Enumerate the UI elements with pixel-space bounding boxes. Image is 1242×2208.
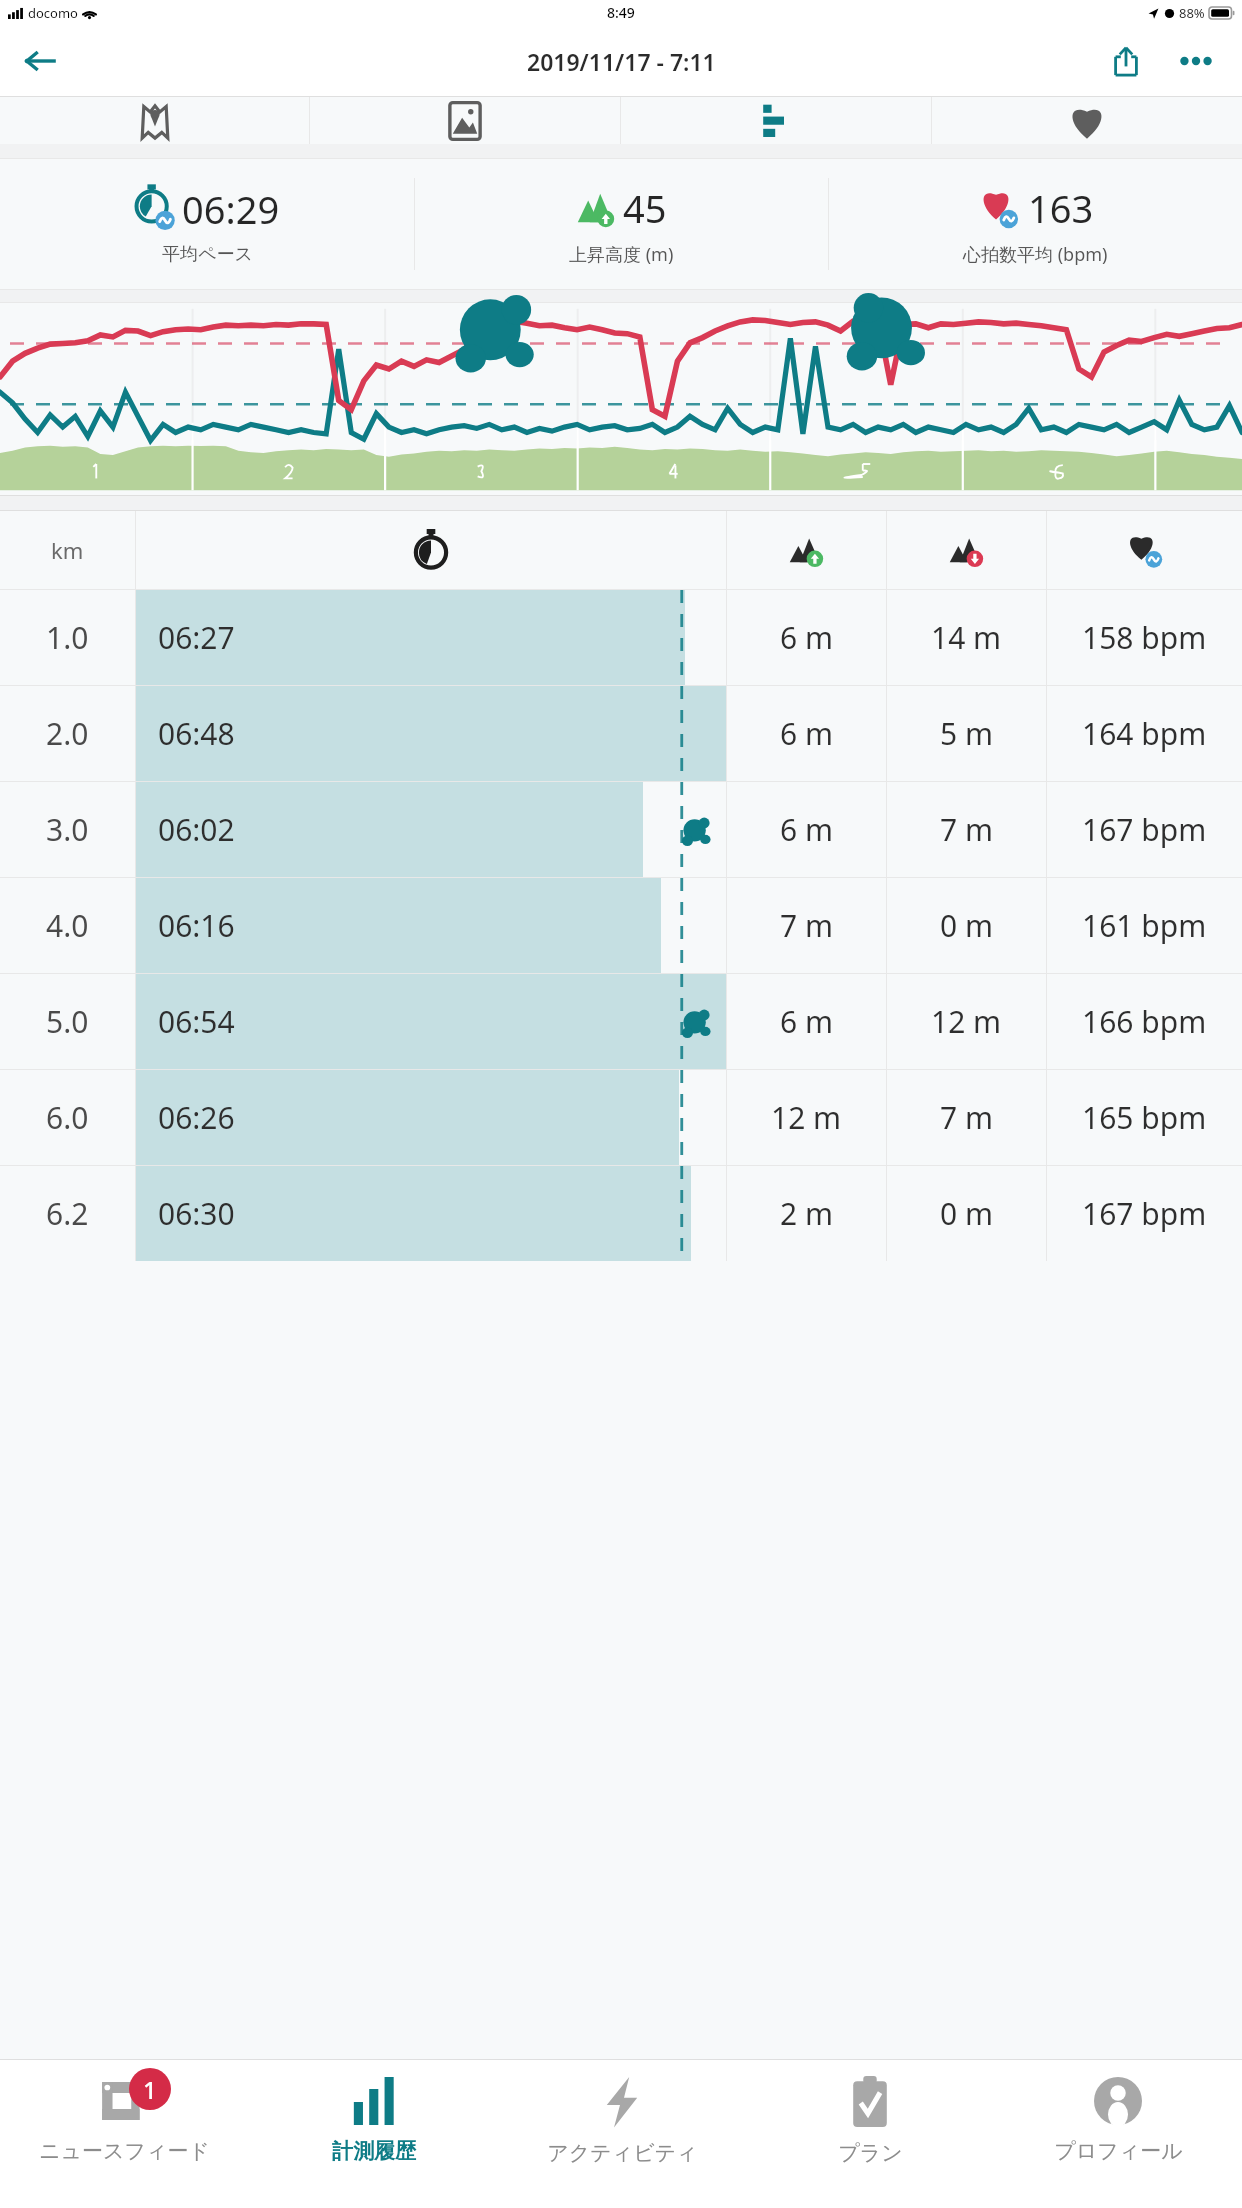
staticText: 平均ペース (162, 243, 253, 266)
staticText: 5.0 (46, 1001, 89, 1042)
button[interactable]: 1.0 (0, 590, 1242, 685)
staticText: 6.2 (46, 1193, 89, 1234)
button[interactable]: 5.0 (0, 974, 1242, 1069)
staticText: 167 bpm (1082, 1193, 1207, 1234)
staticText: 14 m (931, 617, 1002, 658)
staticText: 2019/11/17 - 7:11 (527, 46, 716, 77)
button[interactable]: 45 (415, 159, 828, 289)
staticText: 6 m (780, 713, 834, 754)
staticText: 3.0 (46, 809, 89, 850)
staticText: 163 (1028, 182, 1094, 234)
staticText: 12 m (931, 1001, 1002, 1042)
staticText: 167 bpm (1082, 809, 1207, 850)
button[interactable]: 3.0 (0, 782, 1242, 877)
staticText: プラン (838, 2140, 903, 2166)
staticText: 上昇高度 (m) (569, 242, 674, 267)
staticText: 7 m (780, 905, 834, 946)
button[interactable]: Photos (310, 97, 620, 144)
staticText: 1 (143, 2073, 157, 2106)
staticText: 166 bpm (1082, 1001, 1207, 1042)
staticText: 06:16 (158, 905, 235, 946)
staticText: 6.0 (46, 1097, 89, 1138)
staticText: 06:29 (182, 183, 280, 235)
staticText: 06:27 (158, 617, 235, 658)
staticText: アクティビティ (547, 2140, 698, 2166)
staticText: 161 bpm (1082, 905, 1207, 946)
button[interactable]: 4.0 (0, 878, 1242, 973)
staticText: 5 m (940, 713, 994, 754)
button[interactable]: プラン (746, 2060, 994, 2208)
button[interactable]: Back (14, 35, 66, 87)
button[interactable]: 6.2 (0, 1166, 1242, 1261)
staticText: 8:49 (607, 3, 635, 22)
staticText: 7 m (940, 809, 994, 850)
button[interactable]: Splits (621, 97, 931, 144)
staticText: 158 bpm (1082, 617, 1207, 658)
staticText: ニュースフィード (39, 2138, 210, 2164)
button[interactable]: 計測履歴 (249, 2060, 498, 2208)
staticText: 88% (1179, 4, 1205, 22)
staticText: 計測履歴 (332, 2138, 416, 2164)
button[interactable]: More options (1168, 33, 1224, 89)
staticText: 165 bpm (1082, 1097, 1207, 1138)
staticText: 06:26 (158, 1097, 235, 1138)
staticText: 06:54 (158, 1001, 235, 1042)
staticText: 06:48 (158, 713, 235, 754)
staticText: 0 m (940, 1193, 994, 1234)
staticText: 164 bpm (1082, 713, 1207, 754)
button[interactable]: 6.0 (0, 1070, 1242, 1165)
button[interactable]: アクティビティ (498, 2060, 746, 2208)
staticText: docomo (28, 4, 78, 22)
staticText: 6 m (780, 1001, 834, 1042)
button[interactable]: 2.0 (0, 686, 1242, 781)
staticText: 6 m (780, 617, 834, 658)
button[interactable]: Share (1098, 33, 1154, 89)
staticText: 2 m (780, 1193, 834, 1234)
staticText: 1.0 (46, 617, 89, 658)
staticText: プロフィール (1054, 2138, 1183, 2164)
button[interactable]: 1 (0, 2060, 249, 2208)
button[interactable]: 06:29 (0, 159, 414, 289)
staticText: 45 (623, 182, 667, 234)
staticText: 0 m (940, 905, 994, 946)
staticText: 7 m (940, 1097, 994, 1138)
staticText: 06:02 (158, 809, 235, 850)
staticText: 4.0 (46, 905, 89, 946)
button[interactable]: 163 (829, 159, 1242, 289)
staticText: 6 m (780, 809, 834, 850)
staticText: 心拍数平均 (bpm) (963, 242, 1108, 267)
button[interactable]: プロフィール (994, 2060, 1242, 2208)
staticText: 2.0 (46, 713, 89, 754)
staticText: km (51, 535, 84, 565)
staticText: 12 m (771, 1097, 842, 1138)
staticText: 06:30 (158, 1193, 235, 1234)
button[interactable]: Heart rate (932, 97, 1242, 144)
button[interactable]: Map (0, 97, 309, 144)
